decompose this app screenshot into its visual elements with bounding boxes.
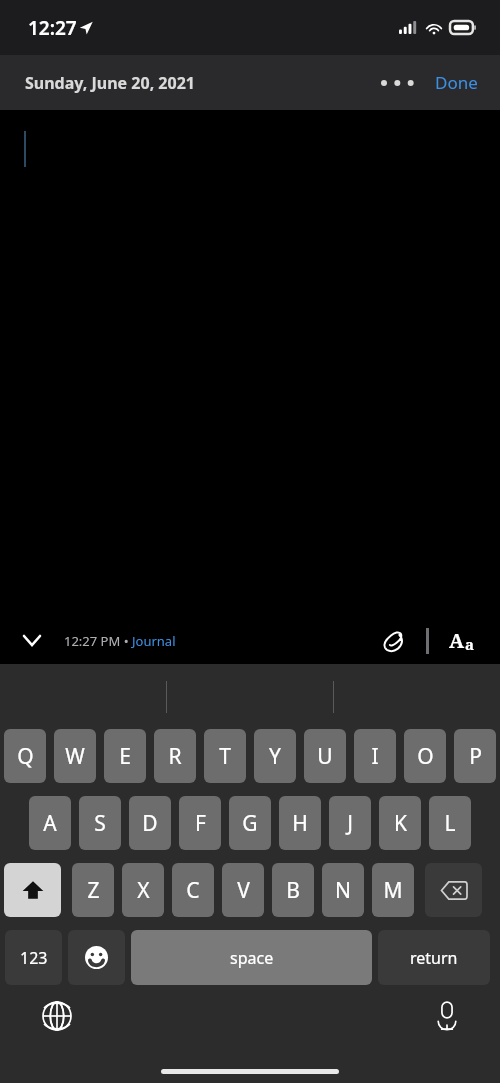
button[interactable]: W	[54, 729, 96, 783]
staticText: return	[410, 947, 458, 969]
button[interactable]: K	[379, 796, 421, 850]
staticText: H	[292, 809, 308, 838]
staticText: E	[119, 742, 131, 771]
staticText: A	[449, 627, 465, 654]
button[interactable]: M	[372, 863, 414, 917]
staticText: Z	[87, 876, 100, 905]
button[interactable]: E	[104, 729, 146, 783]
button[interactable]: S	[79, 796, 121, 850]
button[interactable]: D	[129, 796, 171, 850]
staticText: Y	[269, 742, 281, 771]
button[interactable]: Z	[72, 863, 114, 917]
staticText: V	[237, 876, 250, 905]
staticText: R	[168, 742, 182, 771]
button[interactable]: C	[172, 863, 214, 917]
button[interactable]: More options	[375, 70, 421, 96]
staticText: Journal	[132, 632, 176, 650]
button[interactable]: L	[429, 796, 471, 850]
staticText: G	[242, 809, 258, 838]
staticText: K	[394, 809, 407, 838]
button[interactable]: O	[404, 729, 446, 783]
staticText: L	[444, 809, 456, 838]
button[interactable]: N	[322, 863, 364, 917]
staticText: 12:27 PM •	[64, 632, 132, 650]
staticText: 123	[20, 947, 48, 969]
staticText: C	[186, 876, 200, 905]
button[interactable]: Q	[4, 729, 46, 783]
button[interactable]: Delete	[425, 863, 482, 917]
staticText: space	[230, 947, 274, 969]
button[interactable]: Attach	[378, 625, 410, 657]
staticText: S	[94, 809, 106, 838]
button[interactable]: U	[304, 729, 346, 783]
button[interactable]: space	[131, 930, 372, 985]
button[interactable]: Change keyboard	[38, 997, 76, 1035]
button[interactable]: Done	[431, 63, 482, 102]
button[interactable]: F	[179, 796, 221, 850]
staticText: T	[219, 742, 231, 771]
button[interactable]: P	[454, 729, 496, 783]
button[interactable]: T	[204, 729, 246, 783]
staticText: A	[43, 809, 57, 838]
button[interactable]: X	[122, 863, 164, 917]
staticText: U	[317, 742, 333, 771]
button[interactable]: return	[378, 930, 490, 985]
staticText: N	[335, 876, 351, 905]
staticText: Sunday, June 20, 2021	[25, 72, 195, 94]
staticText: Done	[435, 71, 478, 94]
button[interactable]: R	[154, 729, 196, 783]
button[interactable]: Shift	[4, 863, 61, 917]
staticText: O	[417, 742, 434, 771]
button[interactable]: Collapse	[18, 630, 46, 651]
staticText: F	[195, 809, 206, 838]
staticText: X	[137, 876, 150, 905]
staticText: D	[142, 809, 158, 838]
staticText: P	[469, 742, 482, 771]
staticText: M	[383, 876, 403, 905]
button[interactable]: J	[329, 796, 371, 850]
button[interactable]: G	[229, 796, 271, 850]
button[interactable]: B	[272, 863, 314, 917]
button[interactable]: 123	[5, 930, 62, 985]
button[interactable]: Journal	[132, 632, 176, 650]
button[interactable]: Emoji	[68, 930, 125, 985]
staticText: a	[465, 634, 475, 654]
button[interactable]: Text format	[446, 623, 478, 658]
staticText: Q	[17, 742, 34, 771]
staticText: B	[286, 876, 300, 905]
staticText: 12:27	[28, 15, 77, 41]
button[interactable]: Y	[254, 729, 296, 783]
button[interactable]: Dictate	[432, 997, 462, 1035]
button[interactable]: I	[354, 729, 396, 783]
button[interactable]: V	[222, 863, 264, 917]
button[interactable]: H	[279, 796, 321, 850]
button[interactable]: A	[29, 796, 71, 850]
staticText: W	[65, 742, 85, 771]
staticText: I	[371, 742, 379, 771]
staticText: J	[347, 809, 353, 838]
